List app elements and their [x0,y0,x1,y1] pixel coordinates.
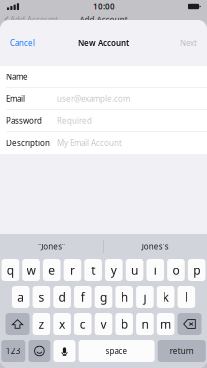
button[interactable]: h [115,286,133,308]
staticText: m [160,316,171,332]
button[interactable]: a [12,286,29,308]
staticText: Cancel [10,38,35,48]
button[interactable]: Dictate [53,340,75,362]
button[interactable]: k [157,286,174,308]
staticText: h [121,289,128,305]
button[interactable]: e [43,259,61,281]
button[interactable]: n [136,313,154,335]
staticText: b [121,316,128,332]
staticText: New Account [78,38,129,48]
staticText: g [100,289,107,305]
button[interactable]: w [22,259,40,281]
staticText: 10:00 [93,1,115,12]
staticText: p [193,262,200,278]
staticText: n [141,316,148,332]
button[interactable]: m [157,313,174,335]
staticText: j [143,289,146,305]
staticText: Add Account [79,14,127,25]
button[interactable]: j [136,286,154,308]
button[interactable]: g [95,286,112,308]
staticText: Email [6,93,25,104]
button[interactable]: Next [170,28,207,58]
staticText: e [48,262,55,278]
staticText: q [7,262,14,278]
staticText: a [17,289,24,305]
staticText: t [91,262,95,278]
staticText: space [106,346,128,356]
staticText: Description [6,138,50,148]
button[interactable]: u [126,259,143,281]
staticText: d [59,289,66,305]
button[interactable]: q [2,259,19,281]
button[interactable]: Shift [5,313,29,335]
button[interactable]: Cancel [0,28,45,58]
staticText: Name [6,71,28,82]
button[interactable]: l [177,286,195,308]
staticText: w [27,262,36,278]
button[interactable]: d [53,286,71,308]
button[interactable]: b [115,313,133,335]
staticText: o [172,262,179,278]
button[interactable]: “Jones” [0,234,103,259]
button[interactable]: return [158,340,206,362]
button[interactable]: Email [0,88,207,110]
staticText: return [170,346,194,356]
staticText: v [100,316,106,332]
button[interactable]: f [74,286,92,308]
staticText: y [111,262,117,278]
button[interactable]: Emoji [28,340,50,362]
staticText: Jones's [142,241,169,252]
staticText: u [131,262,138,278]
button[interactable]: s [33,286,50,308]
button[interactable]: t [84,259,102,281]
button[interactable]: c [74,313,92,335]
staticText: z [38,316,44,332]
button[interactable]: z [33,313,50,335]
staticText: Password [6,115,42,126]
staticText: x [59,316,65,332]
button[interactable]: r [64,259,81,281]
staticText: c [80,316,86,332]
staticText: Add Account [10,14,58,25]
staticText: 123 [6,346,21,356]
button[interactable]: o [167,259,185,281]
staticText: Required [57,115,92,126]
staticText: “Jones” [38,241,65,252]
staticText: l [185,289,188,305]
button[interactable]: space [79,340,155,362]
staticText: k [163,289,169,305]
button[interactable]: p [188,259,205,281]
button[interactable]: x [53,313,71,335]
staticText: My Email Account [57,138,122,148]
button[interactable]: Name [0,66,207,88]
staticText: i [154,262,157,278]
button[interactable]: v [95,313,112,335]
staticText: r [70,262,75,278]
button[interactable]: i [146,259,164,281]
staticText: f [81,289,85,305]
button[interactable]: Jones's [104,234,207,259]
button[interactable]: Password [0,110,207,132]
staticText: Next [180,38,197,48]
button[interactable]: Delete [177,313,201,335]
button[interactable]: y [105,259,123,281]
button[interactable]: 123 [1,340,25,362]
staticText: user@example.com [57,93,130,104]
staticText: s [38,289,44,305]
button[interactable]: Description [0,132,207,154]
